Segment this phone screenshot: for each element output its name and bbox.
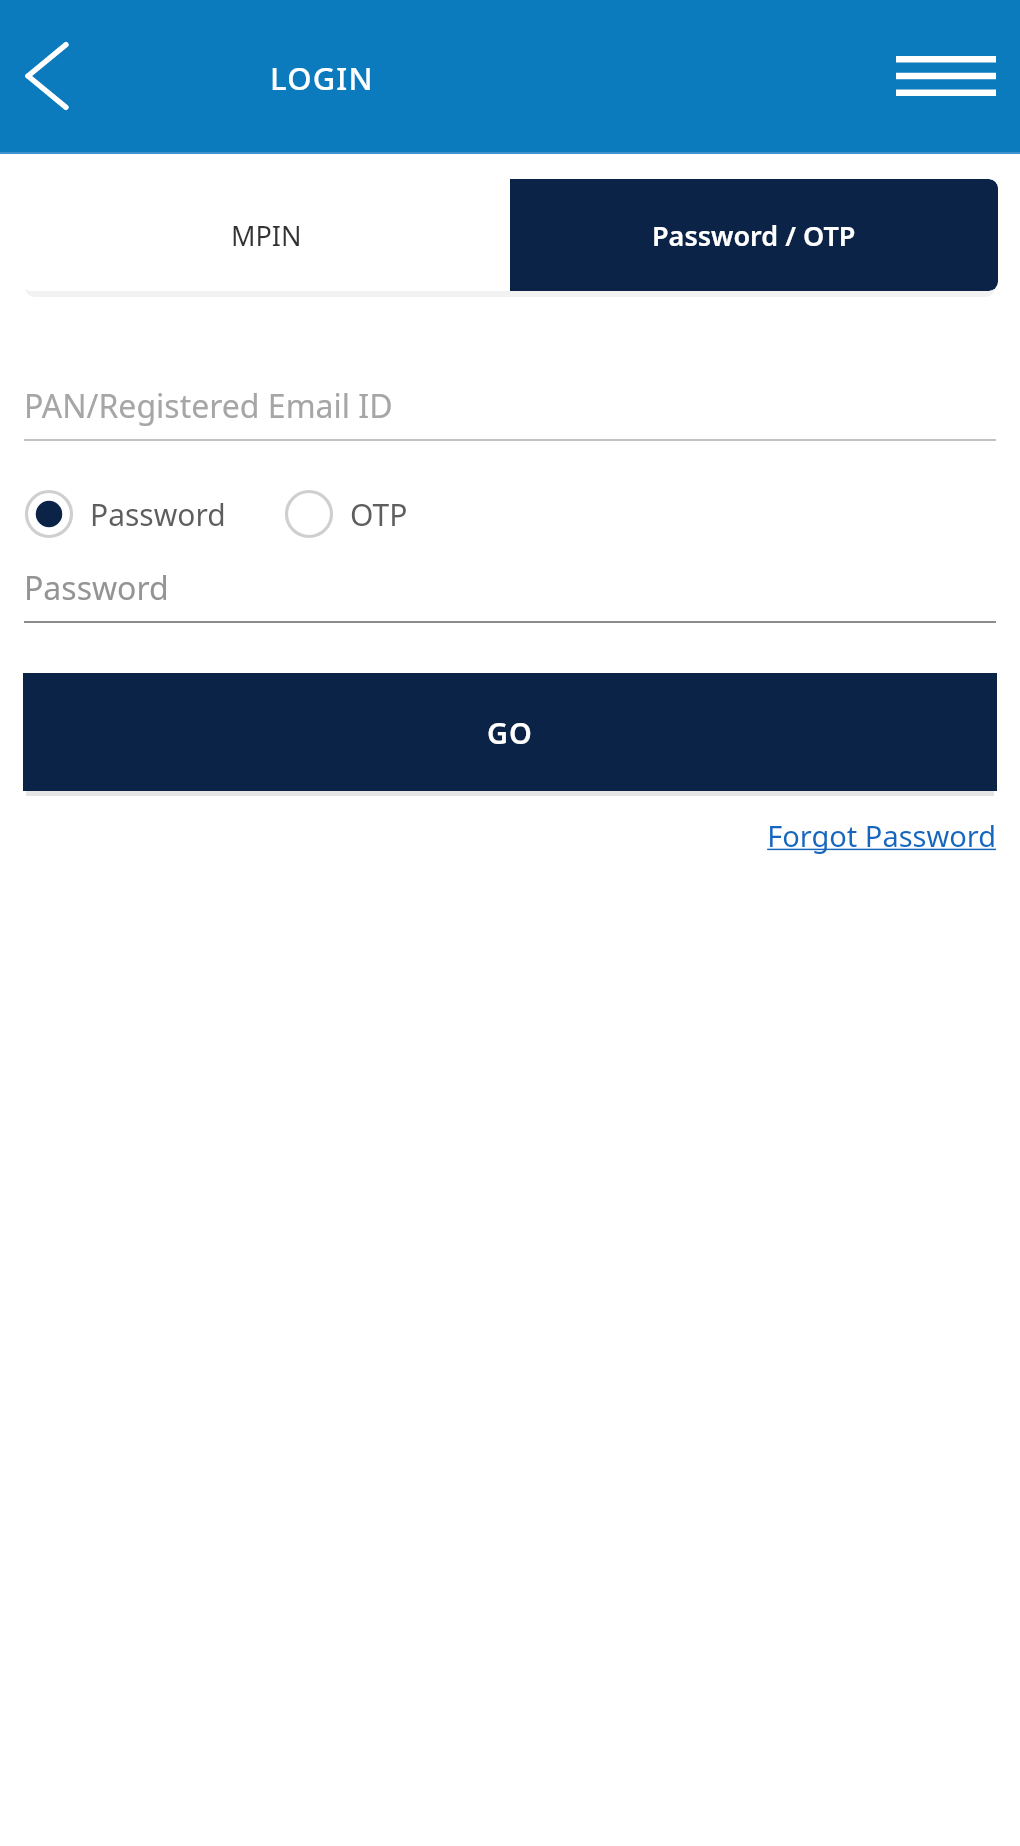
button[interactable]: GO (23, 673, 997, 791)
button[interactable]: Password (24, 555, 996, 623)
button[interactable]: Back (6, 21, 92, 131)
staticText: Password / OTP (652, 217, 856, 254)
staticText: PAN/Registered Email ID (24, 384, 393, 428)
staticText: GO (487, 713, 533, 752)
button[interactable]: PAN/Registered Email ID (24, 373, 996, 441)
button[interactable]: MPIN (22, 179, 510, 291)
button[interactable]: Menu (890, 28, 1002, 124)
staticText: Password (90, 494, 226, 535)
staticText: LOGIN (270, 57, 374, 99)
button[interactable]: Password (24, 481, 226, 547)
button[interactable]: Forgot Password (767, 810, 996, 861)
staticText: OTP (350, 494, 408, 535)
staticText: Forgot Password (767, 816, 996, 855)
button[interactable]: OTP (284, 481, 408, 547)
button[interactable]: Password / OTP (510, 179, 998, 291)
staticText: Password (24, 566, 169, 610)
staticText: MPIN (231, 217, 302, 254)
